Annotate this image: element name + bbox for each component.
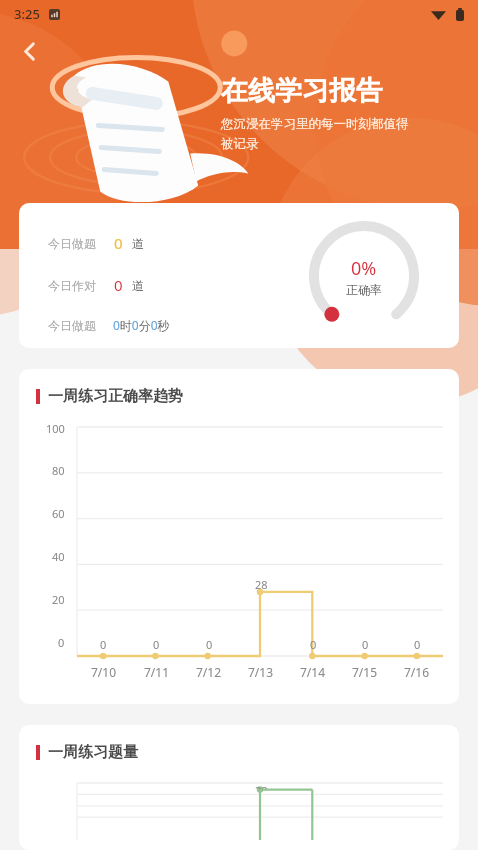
staticText: 今日做题: [48, 318, 96, 333]
staticText: 0: [100, 637, 107, 652]
staticText: 100: [46, 421, 65, 436]
staticText: 28: [255, 783, 268, 789]
staticText: 40: [52, 549, 65, 564]
staticText: 0: [414, 637, 421, 652]
staticText: 今日作对: [48, 278, 96, 293]
staticText: 7/14: [300, 664, 326, 680]
staticText: 0: [58, 635, 65, 650]
staticText: 7/15: [352, 664, 378, 680]
staticText: 今日做题: [48, 236, 96, 251]
staticText: 80: [52, 463, 65, 478]
staticText: 0: [114, 233, 123, 253]
staticText: 道: [132, 278, 144, 293]
staticText: 0: [114, 275, 123, 295]
staticText: 3:25: [14, 5, 40, 23]
button[interactable]: Back: [6, 28, 52, 74]
button[interactable]: 一周练习正确率趋势: [19, 369, 459, 704]
staticText: 0: [362, 637, 369, 652]
staticText: 在线学习报告: [221, 74, 383, 108]
staticText: 60: [52, 506, 65, 521]
staticText: 7/11: [144, 664, 170, 680]
staticText: 0: [153, 637, 160, 652]
staticText: 道: [132, 236, 144, 251]
staticText: 正确率: [346, 282, 382, 297]
staticText: 7/12: [196, 664, 222, 680]
button[interactable]: 一周练习题量: [19, 725, 459, 850]
staticText: 一周练习题量: [48, 743, 138, 762]
staticText: 0: [206, 637, 213, 652]
staticText: 7/16: [404, 664, 430, 680]
staticText: 您沉浸在学习里的每一时刻都值得 被记录: [221, 116, 409, 152]
staticText: 0%: [351, 256, 377, 281]
staticText: 7/10: [91, 664, 117, 680]
staticText: 20: [52, 592, 65, 607]
staticText: 一周练习正确率趋势: [48, 387, 183, 406]
button[interactable]: 今日做题: [19, 203, 459, 348]
staticText: 28: [255, 577, 268, 592]
staticText: 7/13: [248, 664, 274, 680]
staticText: 0时0分0秒: [113, 317, 170, 333]
staticText: 0: [310, 637, 317, 652]
